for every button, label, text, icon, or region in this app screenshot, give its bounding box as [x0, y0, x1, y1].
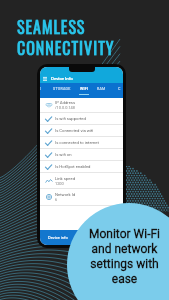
button[interactable]: Device info — [40, 230, 123, 245]
staticText: C — [118, 87, 121, 91]
staticText: Device info — [48, 235, 68, 240]
staticText: WIFI — [80, 87, 89, 91]
staticText: IP Address — [55, 100, 76, 105]
button[interactable]: E — [40, 87, 42, 91]
staticText: SEAMLESS — [17, 15, 86, 39]
button[interactable]: Is connected to internet — [40, 137, 123, 149]
staticText: Is Connected via wifi — [55, 128, 94, 133]
button[interactable]: WIFI — [80, 87, 89, 91]
button[interactable]: Is wifi supported — [40, 113, 123, 125]
staticText: CONNECTIVITY — [17, 36, 115, 60]
button[interactable]: Is Connected via wifi — [40, 125, 123, 137]
button[interactable]: Is HotSpot enabled — [40, 161, 123, 173]
other: Menu — [43, 77, 47, 80]
staticText: STORAGE — [53, 87, 71, 91]
button[interactable]: C — [118, 87, 121, 91]
staticText: 1200 — [55, 181, 64, 186]
staticText: /10.0.0.148 — [55, 105, 75, 110]
button[interactable]: RAM — [97, 87, 106, 91]
staticText: Is HotSpot enabled — [55, 164, 91, 169]
staticText: Network Id — [55, 192, 76, 197]
button[interactable]: Is wifi on — [40, 149, 123, 161]
button[interactable]: Link speed — [40, 173, 123, 189]
staticText: Monitor Wi-Fi and network settings with … — [89, 227, 160, 286]
staticText: Is connected to internet — [55, 140, 99, 145]
staticText: Is wifi supported — [55, 116, 86, 121]
staticText: RAM — [97, 87, 106, 91]
staticText: 6 — [55, 197, 58, 202]
staticText: E — [40, 87, 42, 91]
staticText: Link speed — [55, 176, 76, 181]
button[interactable]: Network Id — [40, 189, 123, 206]
staticText: Device Info — [51, 76, 73, 81]
button[interactable]: IP Address — [40, 98, 123, 113]
button[interactable]: STORAGE — [53, 87, 71, 91]
staticText: Is wifi on — [55, 152, 72, 157]
